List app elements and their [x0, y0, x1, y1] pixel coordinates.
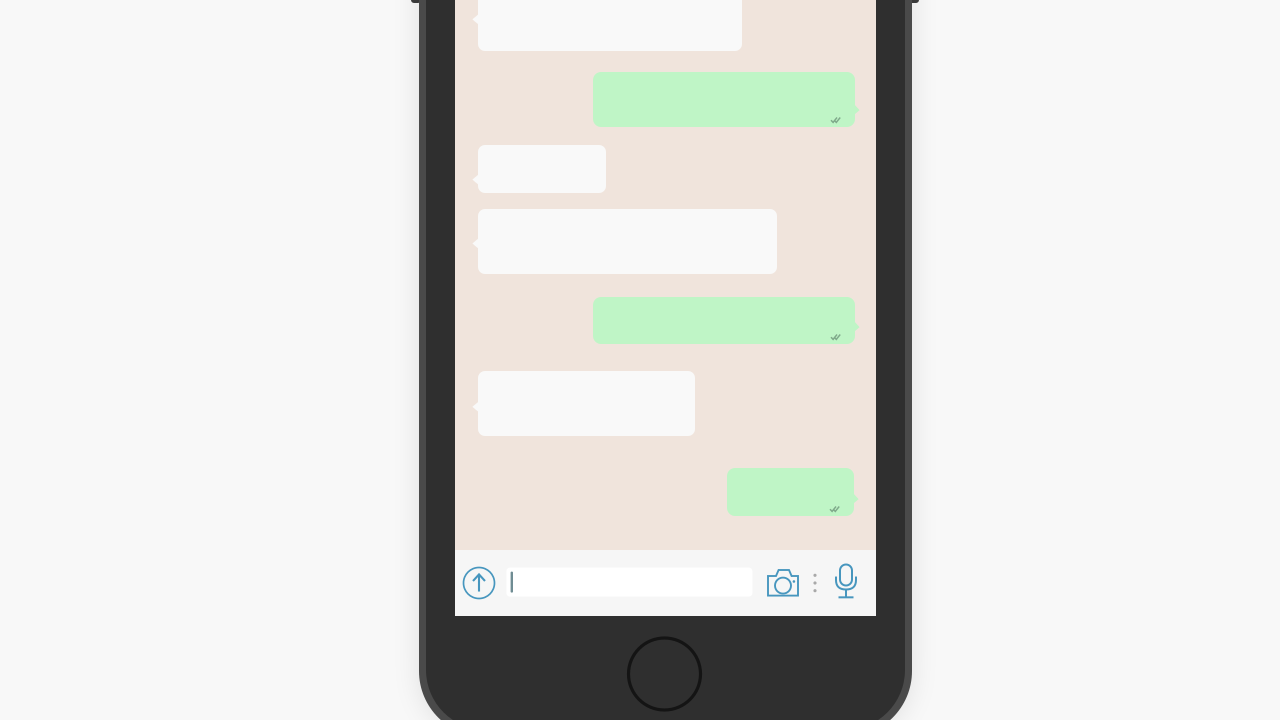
button[interactable]: Sent message, delivered [593, 297, 864, 344]
button[interactable]: Camera [767, 569, 799, 597]
button[interactable]: Received message [472, 209, 777, 274]
button[interactable]: Type a message [506, 568, 752, 597]
button[interactable]: Received message [472, 145, 606, 193]
button[interactable]: More options [813, 573, 817, 592]
button[interactable]: Record voice message [835, 564, 857, 598]
button[interactable]: Received message [472, 371, 695, 436]
button[interactable]: Received message [472, 0, 742, 51]
button[interactable]: Sent message, delivered [593, 72, 864, 127]
button[interactable]: Attach [462, 566, 495, 599]
button[interactable]: Sent message, delivered [727, 468, 863, 516]
